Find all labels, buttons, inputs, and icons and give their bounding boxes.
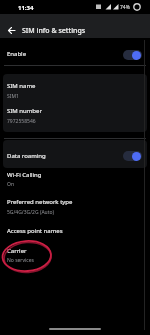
staticText: Data roaming xyxy=(7,152,46,160)
button[interactable]: Enable xyxy=(0,44,150,65)
staticText: SIM name xyxy=(7,82,36,90)
staticText: 74% xyxy=(120,4,130,11)
button[interactable]: SIM name xyxy=(3,74,147,103)
staticText: 7972558546 xyxy=(7,118,36,125)
staticText: Carrier xyxy=(7,247,27,255)
staticText: SIM1 xyxy=(7,93,19,100)
staticText: Wi-Fi Calling xyxy=(7,171,42,179)
staticText: No services xyxy=(7,257,34,264)
button[interactable] xyxy=(8,27,15,34)
button[interactable]: Carrier xyxy=(0,245,150,267)
staticText: 5G/4G/3G/2G (Auto) xyxy=(7,209,54,216)
staticText: SIM info & settings xyxy=(22,26,86,36)
staticText: Preferred network type xyxy=(7,198,73,206)
staticText: Access point names xyxy=(7,227,63,235)
staticText: 11:34 xyxy=(18,4,34,12)
button[interactable]: Preferred network type xyxy=(0,196,150,220)
button[interactable]: Data roaming xyxy=(3,140,147,168)
staticText: Enable xyxy=(7,50,27,58)
staticText: On xyxy=(7,181,14,188)
button[interactable]: Access point names xyxy=(0,224,150,242)
staticText: SIM number xyxy=(7,107,42,115)
button[interactable]: SIM number xyxy=(3,103,147,132)
button[interactable]: Wi-Fi Calling xyxy=(0,168,150,190)
button[interactable]: SIM info & settings xyxy=(0,14,150,38)
